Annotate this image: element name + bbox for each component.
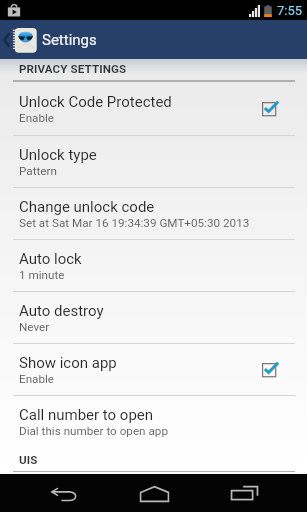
staticText: Dial this number to open app [19,424,168,438]
button[interactable]: Auto lock [0,240,307,291]
staticText: 7:55 [277,3,303,18]
button[interactable]: Unlock type [0,136,307,187]
button[interactable]: Auto destroy [0,292,307,343]
staticText: 1 minute [19,268,65,282]
staticText: Unlock Code Protected [19,93,172,111]
staticText: PRIVACY SETTINGS [19,62,127,76]
staticText: Enable [19,372,55,386]
button[interactable]: Change unlock code [0,188,307,239]
button[interactable]: Home [111,474,197,512]
staticText: Unlock type [19,146,97,164]
button[interactable]: Unlock Code Protected [0,82,307,135]
button[interactable]: Navigate up [0,20,12,59]
staticText: Auto lock [19,250,82,268]
button[interactable]: Show icon app [0,344,307,395]
staticText: Auto destroy [19,302,104,320]
staticText: Set at Sat Mar 16 19:34:39 GMT+05:30 201… [19,216,250,230]
staticText: Settings [42,31,97,49]
staticText: Pattern [19,164,57,178]
staticText: Show icon app [19,354,117,372]
staticText: UIS [19,453,38,467]
button[interactable]: Call number to open [0,396,307,448]
button[interactable]: Recent apps [201,474,287,512]
staticText: Call number to open [19,406,154,424]
staticText: Never [19,320,50,334]
staticText: Change unlock code [19,198,155,216]
staticText: Enable [19,111,55,125]
button[interactable]: Back [21,474,107,512]
